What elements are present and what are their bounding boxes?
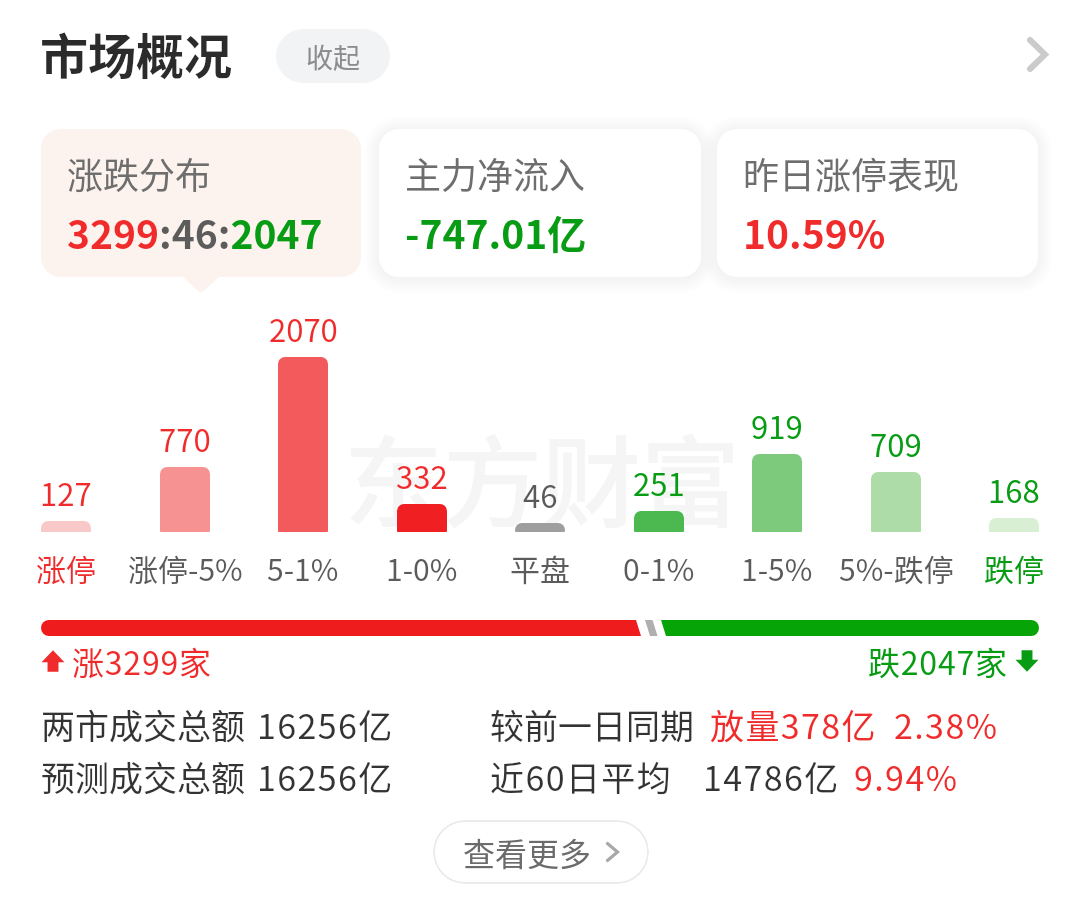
button[interactable]: 市场概况 [40, 18, 233, 88]
staticText: 涨3299家 [72, 638, 212, 684]
staticText: 放量378亿 [710, 700, 878, 749]
staticText: 涨停-5% [128, 546, 243, 589]
button[interactable]: 主力净流入 [379, 129, 701, 277]
button[interactable]: 涨跌分布 [41, 129, 361, 277]
staticText: 919 [751, 403, 803, 448]
staticText: 市场概况 [40, 18, 233, 88]
staticText: 9.94% [854, 752, 959, 801]
staticText: 预测成交总额 [41, 752, 245, 801]
staticText: -747.01亿 [405, 204, 587, 260]
staticText: 251 [633, 460, 685, 505]
button[interactable]: 涨3299家 [40, 638, 212, 684]
staticText: 近60日平均 [490, 752, 673, 801]
staticText: 较前一日同期 [490, 700, 694, 749]
staticText: 涨跌分布 [67, 147, 212, 199]
button[interactable]: 预测成交总额 [41, 752, 394, 801]
staticText: 709 [870, 421, 922, 466]
staticText: 332 [396, 453, 448, 498]
staticText: 168 [988, 467, 1040, 512]
staticText: 16256亿 [257, 700, 394, 749]
staticText: 46 [523, 472, 558, 517]
button[interactable]: Expand section [1001, 18, 1073, 90]
staticText: 涨停 [36, 546, 96, 589]
staticText: 16256亿 [257, 752, 394, 801]
staticText: 2.38% [894, 700, 999, 749]
staticText: 3299:46:2047 [67, 204, 323, 260]
staticText: 昨日涨停表现 [743, 147, 960, 199]
staticText: 5%-跌停 [839, 546, 954, 589]
staticText: 0-1% [623, 546, 695, 589]
staticText: 跌停 [984, 546, 1044, 589]
staticText: 1-5% [741, 546, 813, 589]
staticText: 主力净流入 [405, 147, 586, 199]
staticText: 770 [159, 416, 211, 461]
staticText: 平盘 [510, 546, 570, 589]
staticText: 查看更多 [463, 829, 592, 875]
staticText: 1-0% [386, 546, 458, 589]
staticText: 跌2047家 [868, 638, 1008, 684]
staticText: 两市成交总额 [41, 700, 245, 749]
button[interactable]: 近60日平均 [490, 752, 959, 801]
button[interactable]: 昨日涨停表现 [717, 129, 1038, 277]
staticText: 东方财富 [344, 404, 740, 547]
staticText: 收起 [306, 37, 360, 76]
staticText: 2070 [269, 306, 338, 351]
button[interactable]: 查看更多 [433, 820, 649, 884]
button[interactable]: 较前一日同期 [490, 700, 999, 749]
button[interactable]: 两市成交总额 [41, 700, 394, 749]
staticText: 5-1% [267, 546, 339, 589]
staticText: 14786亿 [703, 752, 840, 801]
staticText: 10.59% [743, 204, 886, 260]
staticText: 127 [40, 470, 92, 515]
button[interactable]: 收起 [276, 29, 390, 83]
